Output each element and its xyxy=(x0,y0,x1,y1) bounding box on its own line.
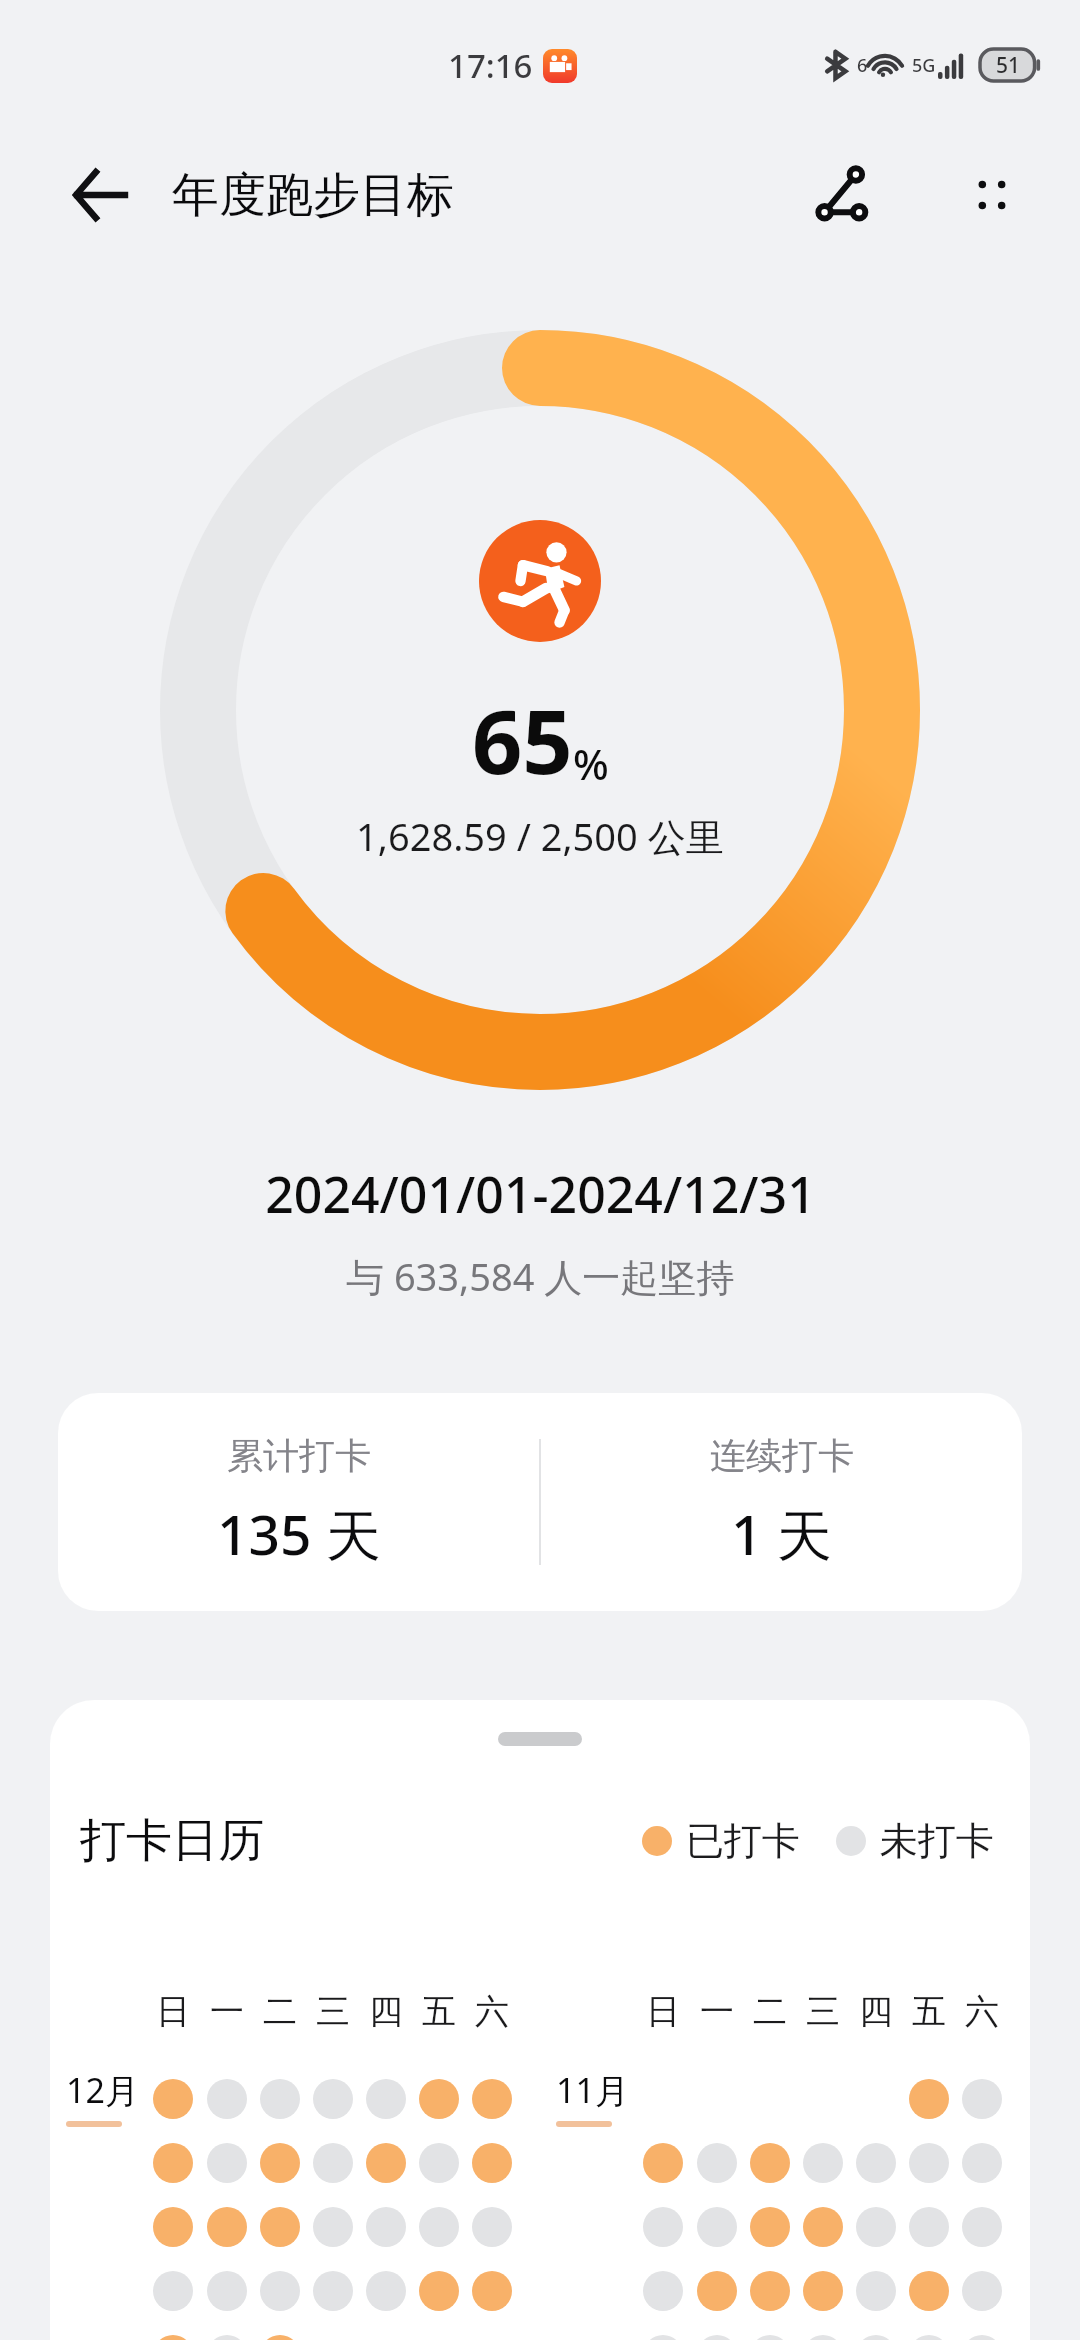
button[interactable]: 累计打卡 xyxy=(58,1393,1022,1611)
staticText: 与 633,584 人一起坚持 xyxy=(346,1250,735,1302)
staticText: 六 xyxy=(475,1990,509,2033)
staticText: 二 xyxy=(753,1990,787,2033)
staticText: 年度跑步目标 xyxy=(172,166,454,225)
staticText: 日 xyxy=(646,1990,680,2033)
staticText: 一 xyxy=(700,1990,734,2033)
staticText: 五 xyxy=(422,1990,456,2033)
staticText: % xyxy=(573,735,609,792)
staticText: 二 xyxy=(263,1990,297,2033)
staticText: 四 xyxy=(859,1990,893,2033)
staticText: 12月 xyxy=(66,2067,139,2113)
staticText: 2024/01/01-2024/12/31 xyxy=(265,1160,816,1228)
staticText: 1 天 xyxy=(731,1496,832,1571)
staticText: 累计打卡 xyxy=(227,1433,371,1478)
staticText: 连续打卡 xyxy=(710,1433,854,1478)
button[interactable]: More options xyxy=(946,149,1038,241)
button[interactable]: Share xyxy=(798,149,890,241)
button[interactable]: 已打卡 xyxy=(642,1817,800,1865)
staticText: 未打卡 xyxy=(880,1817,994,1865)
staticText: 135 天 xyxy=(217,1496,381,1571)
staticText: 三 xyxy=(316,1990,350,2033)
staticText: 65 xyxy=(472,680,573,800)
button[interactable]: 未打卡 xyxy=(836,1817,994,1865)
staticText: 1,628.59 / 2,500 公里 xyxy=(356,810,724,862)
staticText: 6 xyxy=(857,53,868,78)
staticText: 四 xyxy=(369,1990,403,2033)
staticText: 三 xyxy=(806,1990,840,2033)
button[interactable]: 连续打卡 xyxy=(541,1393,1022,1611)
staticText: 五 xyxy=(912,1990,946,2033)
staticText: 一 xyxy=(210,1990,244,2033)
staticText: 六 xyxy=(965,1990,999,2033)
staticText: 17:16 xyxy=(448,43,533,88)
staticText: 已打卡 xyxy=(686,1817,800,1865)
staticText: 11月 xyxy=(556,2067,629,2113)
button[interactable]: Back xyxy=(52,147,148,243)
staticText: 打卡日历 xyxy=(80,1812,264,1870)
button[interactable]: 累计打卡 xyxy=(58,1393,539,1611)
staticText: 51 xyxy=(996,51,1021,80)
staticText: 5G xyxy=(912,53,936,78)
staticText: 日 xyxy=(156,1990,190,2033)
